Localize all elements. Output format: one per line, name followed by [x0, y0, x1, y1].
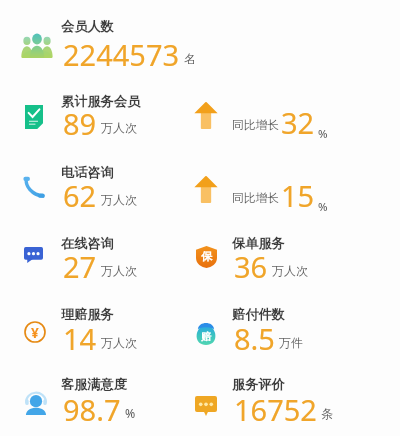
- staticText: 万件: [279, 335, 303, 350]
- staticText: 8.5: [234, 319, 275, 358]
- staticText: 累计服务会员: [61, 93, 141, 110]
- staticText: 27: [63, 247, 97, 286]
- staticText: 赔: [201, 330, 212, 343]
- button[interactable]: 会员人数: [61, 18, 114, 35]
- other: 保单服务: [196, 246, 217, 268]
- button[interactable]: 62: [63, 176, 137, 215]
- other: 客服满意度: [24, 392, 48, 415]
- staticText: 同比增长: [232, 118, 279, 133]
- button[interactable]: 客服满意度: [61, 376, 127, 393]
- staticText: 32: [281, 103, 315, 142]
- button[interactable]: 89: [63, 104, 137, 143]
- staticText: %: [318, 126, 328, 141]
- button[interactable]: 8.5: [234, 319, 303, 358]
- other: 在线咨询: [24, 247, 43, 263]
- staticText: ¥: [31, 323, 39, 342]
- button[interactable]: 电话咨询: [61, 164, 114, 181]
- staticText: 万人次: [101, 263, 137, 278]
- staticText: 会员人数: [61, 18, 114, 35]
- staticText: 同比增长: [232, 191, 279, 206]
- staticText: 服务评价: [232, 376, 285, 393]
- staticText: 14: [63, 319, 97, 358]
- button[interactable]: 服务评价: [232, 376, 285, 393]
- staticText: 万人次: [101, 335, 137, 350]
- other: 会员人数: [21, 33, 53, 58]
- button[interactable]: 同比增长: [232, 118, 279, 133]
- button[interactable]: 16752: [234, 390, 333, 429]
- staticText: 保单服务: [232, 235, 285, 252]
- other: 理赔服务: [24, 321, 46, 343]
- staticText: 万人次: [272, 263, 308, 278]
- staticText: 名: [184, 51, 196, 66]
- staticText: 赔付件数: [232, 306, 285, 323]
- staticText: 万人次: [101, 192, 137, 207]
- staticText: %: [125, 405, 136, 421]
- button[interactable]: 在线咨询: [61, 235, 114, 252]
- button[interactable]: 同比增长: [232, 191, 279, 206]
- staticText: 16752: [234, 390, 317, 429]
- other: 同比增长15%: [194, 176, 218, 203]
- staticText: 保: [201, 249, 212, 263]
- button[interactable]: 36: [234, 247, 308, 286]
- staticText: %: [318, 199, 328, 214]
- staticText: 2244573: [63, 35, 180, 74]
- button[interactable]: 98.7: [63, 390, 136, 429]
- staticText: 万人次: [101, 120, 137, 135]
- staticText: 89: [63, 104, 97, 143]
- staticText: 15: [281, 176, 315, 215]
- staticText: 客服满意度: [61, 376, 127, 393]
- staticText: 98.7: [63, 390, 121, 429]
- button[interactable]: 27: [63, 247, 137, 286]
- staticText: 理赔服务: [61, 306, 114, 323]
- button[interactable]: 保单服务: [232, 235, 285, 252]
- staticText: 62: [63, 176, 97, 215]
- other: 电话咨询: [21, 175, 47, 201]
- button[interactable]: 15: [281, 176, 328, 215]
- other: 同比增长32%: [194, 102, 218, 129]
- button[interactable]: 32: [281, 103, 328, 142]
- button[interactable]: 2244573: [63, 35, 196, 74]
- button[interactable]: 赔付件数: [232, 306, 285, 323]
- button[interactable]: 累计服务会员: [61, 93, 141, 110]
- staticText: 电话咨询: [61, 164, 114, 181]
- staticText: 条: [321, 406, 333, 421]
- other: 赔付件数: [194, 321, 218, 345]
- staticText: 在线咨询: [61, 235, 114, 252]
- staticText: 36: [234, 247, 268, 286]
- other: 累计服务会员: [25, 105, 43, 129]
- button[interactable]: 14: [63, 319, 137, 358]
- other: 服务评价: [195, 396, 217, 416]
- button[interactable]: 理赔服务: [61, 306, 114, 323]
